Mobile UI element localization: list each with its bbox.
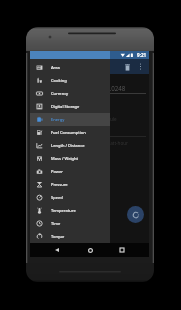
button[interactable]: Torque [30,230,110,243]
button[interactable]: Fuel Consumption [30,126,110,139]
button[interactable]: Speed [30,191,110,204]
button[interactable]: Mass / Weight [30,152,110,165]
staticText: Mass / Weight [51,156,79,161]
staticText: Digital Storage [51,104,80,109]
staticText: Cooking [51,78,67,83]
staticText: 0.0248 [106,84,126,92]
staticText: Currency [51,91,69,96]
staticText: Time [51,221,61,226]
staticText: Joule [106,116,117,122]
staticText: Torque [51,234,65,239]
button[interactable]: Delete [120,60,134,74]
staticText: Length / Distance [51,143,85,148]
button[interactable]: Home [84,244,96,256]
button[interactable]: Currency [30,87,110,100]
button[interactable]: Length / Distance [30,139,110,152]
button[interactable]: Swap units [127,206,144,223]
staticText: Fuel Consumption [51,130,86,135]
button[interactable]: Cooking [30,74,110,87]
staticText: Energy [51,117,65,122]
button[interactable]: Time [30,217,110,230]
button[interactable]: Area [30,61,110,74]
button[interactable]: Pressure [30,178,110,191]
button[interactable]: Temperature [30,204,110,217]
staticText: Area [51,65,60,70]
button[interactable]: More options [134,60,147,73]
staticText: Speed [51,195,63,200]
staticText: Watt-hour [106,140,128,146]
staticText: 9:21 [137,52,147,58]
button[interactable]: Back [51,244,63,256]
button[interactable]: Energy [30,113,110,126]
button[interactable]: Power [30,165,110,178]
staticText: Power [51,169,64,174]
staticText: Temperature [51,208,76,213]
button[interactable]: Digital Storage [30,100,110,113]
staticText: Pressure [51,182,68,187]
button[interactable]: Recents [116,244,128,256]
